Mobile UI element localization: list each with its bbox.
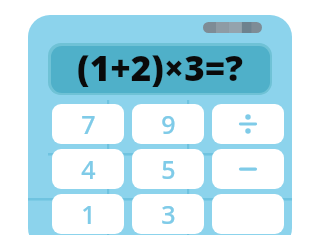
button[interactable]: 7 — [52, 104, 124, 144]
button[interactable]: Divide — [212, 104, 284, 144]
button[interactable]: 3 — [132, 194, 204, 234]
staticText: 7 — [81, 107, 96, 141]
staticText: (1+2)×3=? — [77, 44, 243, 92]
staticText: 9 — [161, 107, 176, 141]
button[interactable] — [212, 194, 284, 234]
other: Speaker — [203, 22, 262, 33]
staticText: 4 — [81, 152, 96, 186]
button[interactable]: 1 — [52, 194, 124, 234]
button[interactable]: Subtract — [212, 149, 284, 189]
button[interactable]: 9 — [132, 104, 204, 144]
button[interactable]: 5 — [132, 149, 204, 189]
staticText: 3 — [161, 197, 176, 231]
staticText: 1 — [81, 197, 96, 231]
staticText: 5 — [161, 152, 176, 186]
button[interactable]: 4 — [52, 149, 124, 189]
